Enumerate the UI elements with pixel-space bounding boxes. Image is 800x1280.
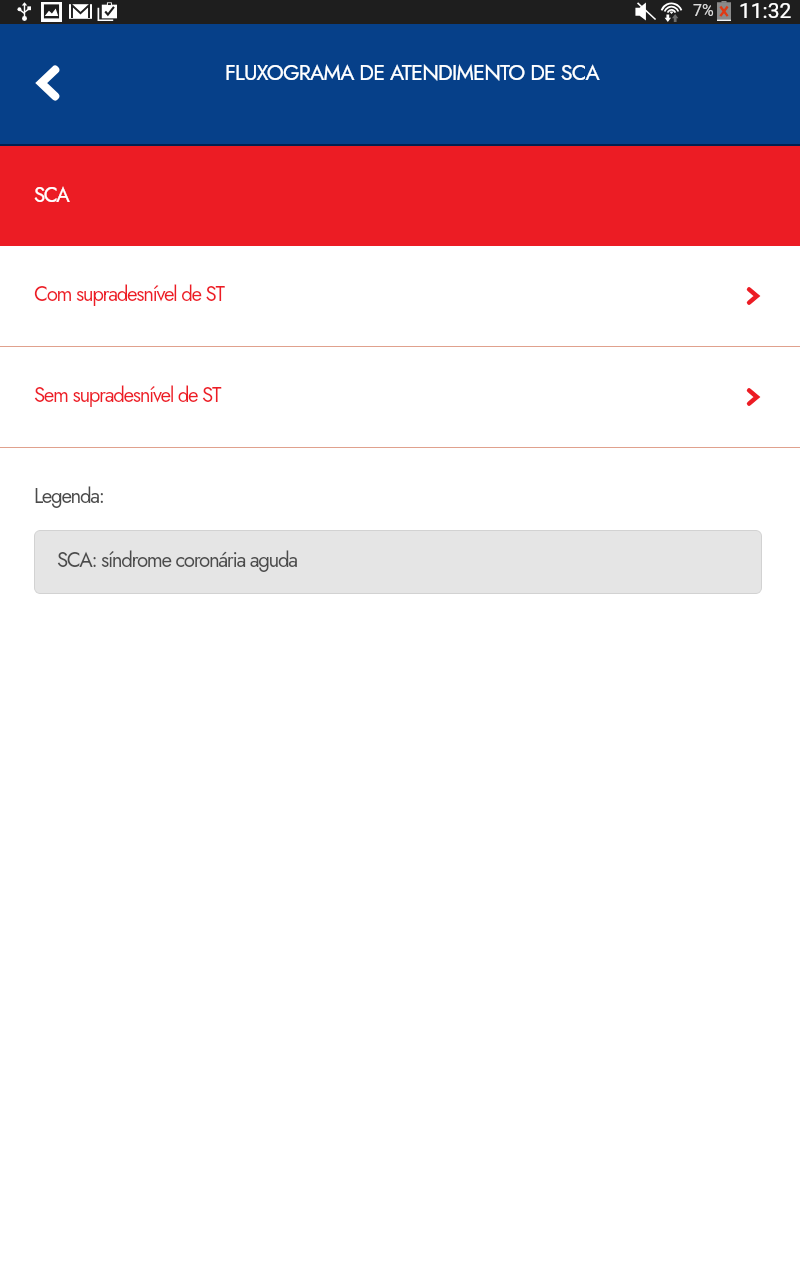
staticText: Sem supradesnível de ST [34, 380, 221, 410]
staticText: Legenda: [34, 481, 104, 511]
button[interactable]: Com supradesnível de ST [0, 246, 800, 347]
staticText: SCA [34, 180, 69, 210]
button[interactable]: Voltar [23, 58, 72, 107]
staticText: FLUXOGRAMA DE ATENDIMENTO DE SCA [225, 57, 599, 88]
staticText: SCA: síndrome coronária aguda [57, 545, 297, 575]
staticText: Com supradesnível de ST [34, 279, 224, 309]
staticText: 11:32 [739, 0, 792, 23]
staticText: 7% [693, 1, 714, 20]
button[interactable]: Sem supradesnível de ST [0, 347, 800, 448]
